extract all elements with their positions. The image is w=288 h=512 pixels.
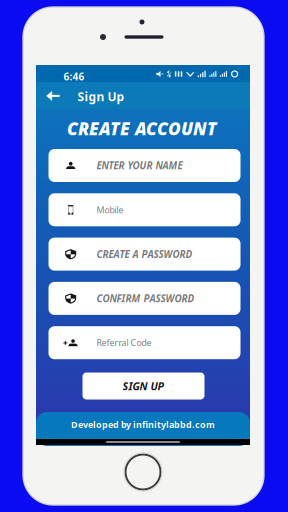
staticText: 6:46: [63, 70, 84, 83]
staticText: CREATE A PASSWORD: [96, 247, 192, 261]
button[interactable]: SIGN UP: [82, 372, 204, 399]
staticText: CONFIRM PASSWORD: [96, 292, 194, 305]
button[interactable]: CREATE A PASSWORD: [48, 238, 240, 271]
staticText: Referral Code: [96, 337, 151, 349]
staticText: Mobile: [96, 204, 123, 216]
staticText: Developed by infinitylabbd.com: [71, 418, 215, 431]
button[interactable]: Back: [38, 81, 68, 110]
button[interactable]: Referral Code: [48, 326, 240, 359]
staticText: ENTER YOUR NAME: [96, 159, 182, 172]
button[interactable]: CONFIRM PASSWORD: [48, 282, 240, 315]
staticText: Sign Up: [77, 88, 124, 105]
button[interactable]: Mobile: [48, 193, 240, 226]
staticText: CREATE ACCOUNT: [67, 117, 217, 140]
button[interactable]: ENTER YOUR NAME: [48, 149, 240, 182]
staticText: SIGN UP: [122, 379, 164, 393]
